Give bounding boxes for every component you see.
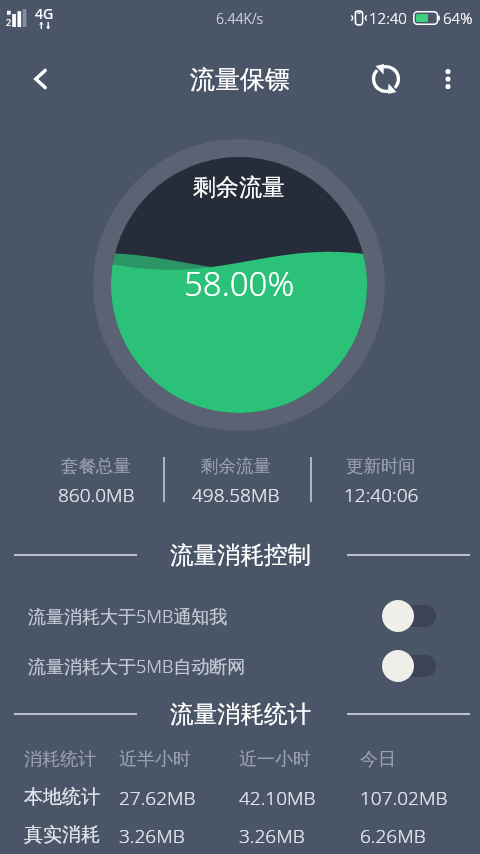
button[interactable]: 流量消耗大于5MB自动断网: [0, 646, 480, 686]
button[interactable]: Refresh: [361, 54, 411, 104]
staticText: 套餐总量: [61, 455, 131, 477]
staticText: 剩余流量: [201, 455, 271, 477]
staticText: 流量消耗控制: [170, 540, 311, 570]
staticText: 12:40:06: [344, 482, 419, 508]
staticText: 流量保镖: [190, 64, 290, 95]
staticText: 498.58MB: [192, 482, 280, 508]
staticText: 3.26MB: [239, 823, 305, 849]
staticText: 剩余流量: [193, 173, 285, 202]
button[interactable]: More options: [423, 54, 473, 104]
staticText: 3.26MB: [119, 823, 185, 849]
staticText: 64%: [443, 8, 473, 28]
button[interactable]: Back: [16, 54, 66, 104]
staticText: 42.10MB: [239, 785, 316, 811]
staticText: 近一小时: [239, 748, 311, 771]
staticText: 流量消耗大于5MB通知我: [28, 604, 228, 629]
staticText: 2: [6, 16, 12, 28]
staticText: 4G: [35, 4, 54, 23]
staticText: 107.02MB: [360, 785, 448, 811]
staticText: 流量消耗统计: [170, 699, 311, 729]
staticText: 27.62MB: [119, 785, 196, 811]
staticText: 58.00%: [184, 261, 295, 306]
button[interactable]: 流量消耗大于5MB通知我: [0, 596, 480, 636]
staticText: 6.26MB: [360, 823, 426, 849]
staticText: 本地统计: [24, 785, 100, 809]
staticText: 860.0MB: [58, 482, 135, 508]
staticText: 消耗统计: [24, 748, 96, 771]
staticText: 6.44K/s: [216, 9, 264, 28]
staticText: 流量消耗大于5MB自动断网: [28, 654, 246, 679]
staticText: 12:40: [369, 8, 407, 28]
staticText: 今日: [360, 748, 396, 771]
staticText: 更新时间: [346, 455, 416, 477]
staticText: 真实消耗: [24, 823, 100, 847]
staticText: 近半小时: [119, 748, 191, 771]
